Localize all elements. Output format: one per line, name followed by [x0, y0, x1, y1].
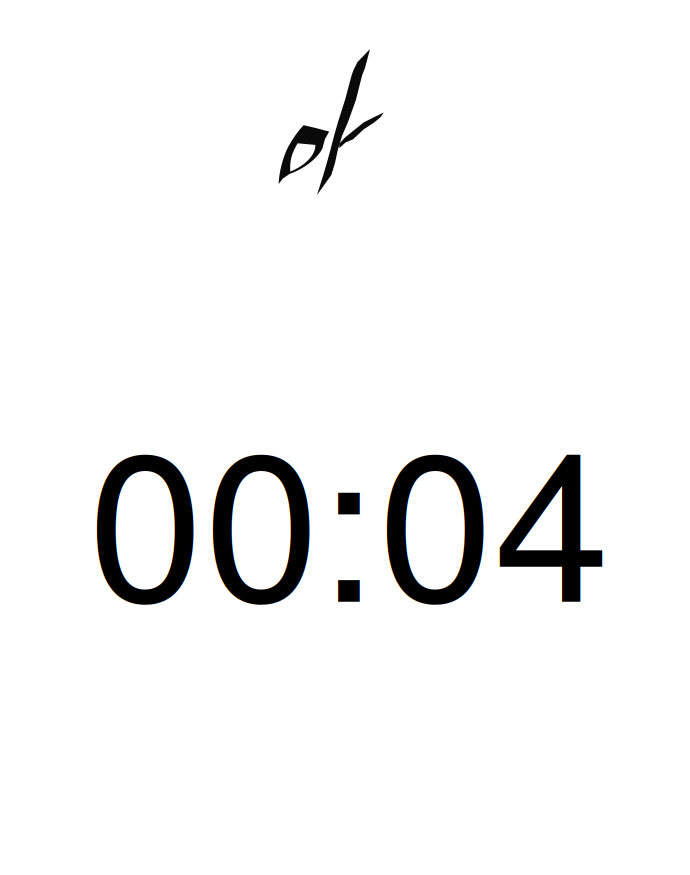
staticText: 00:04 — [88, 363, 610, 661]
button[interactable]: 00:04 — [88, 363, 610, 661]
button[interactable]: Home — [276, 44, 388, 200]
